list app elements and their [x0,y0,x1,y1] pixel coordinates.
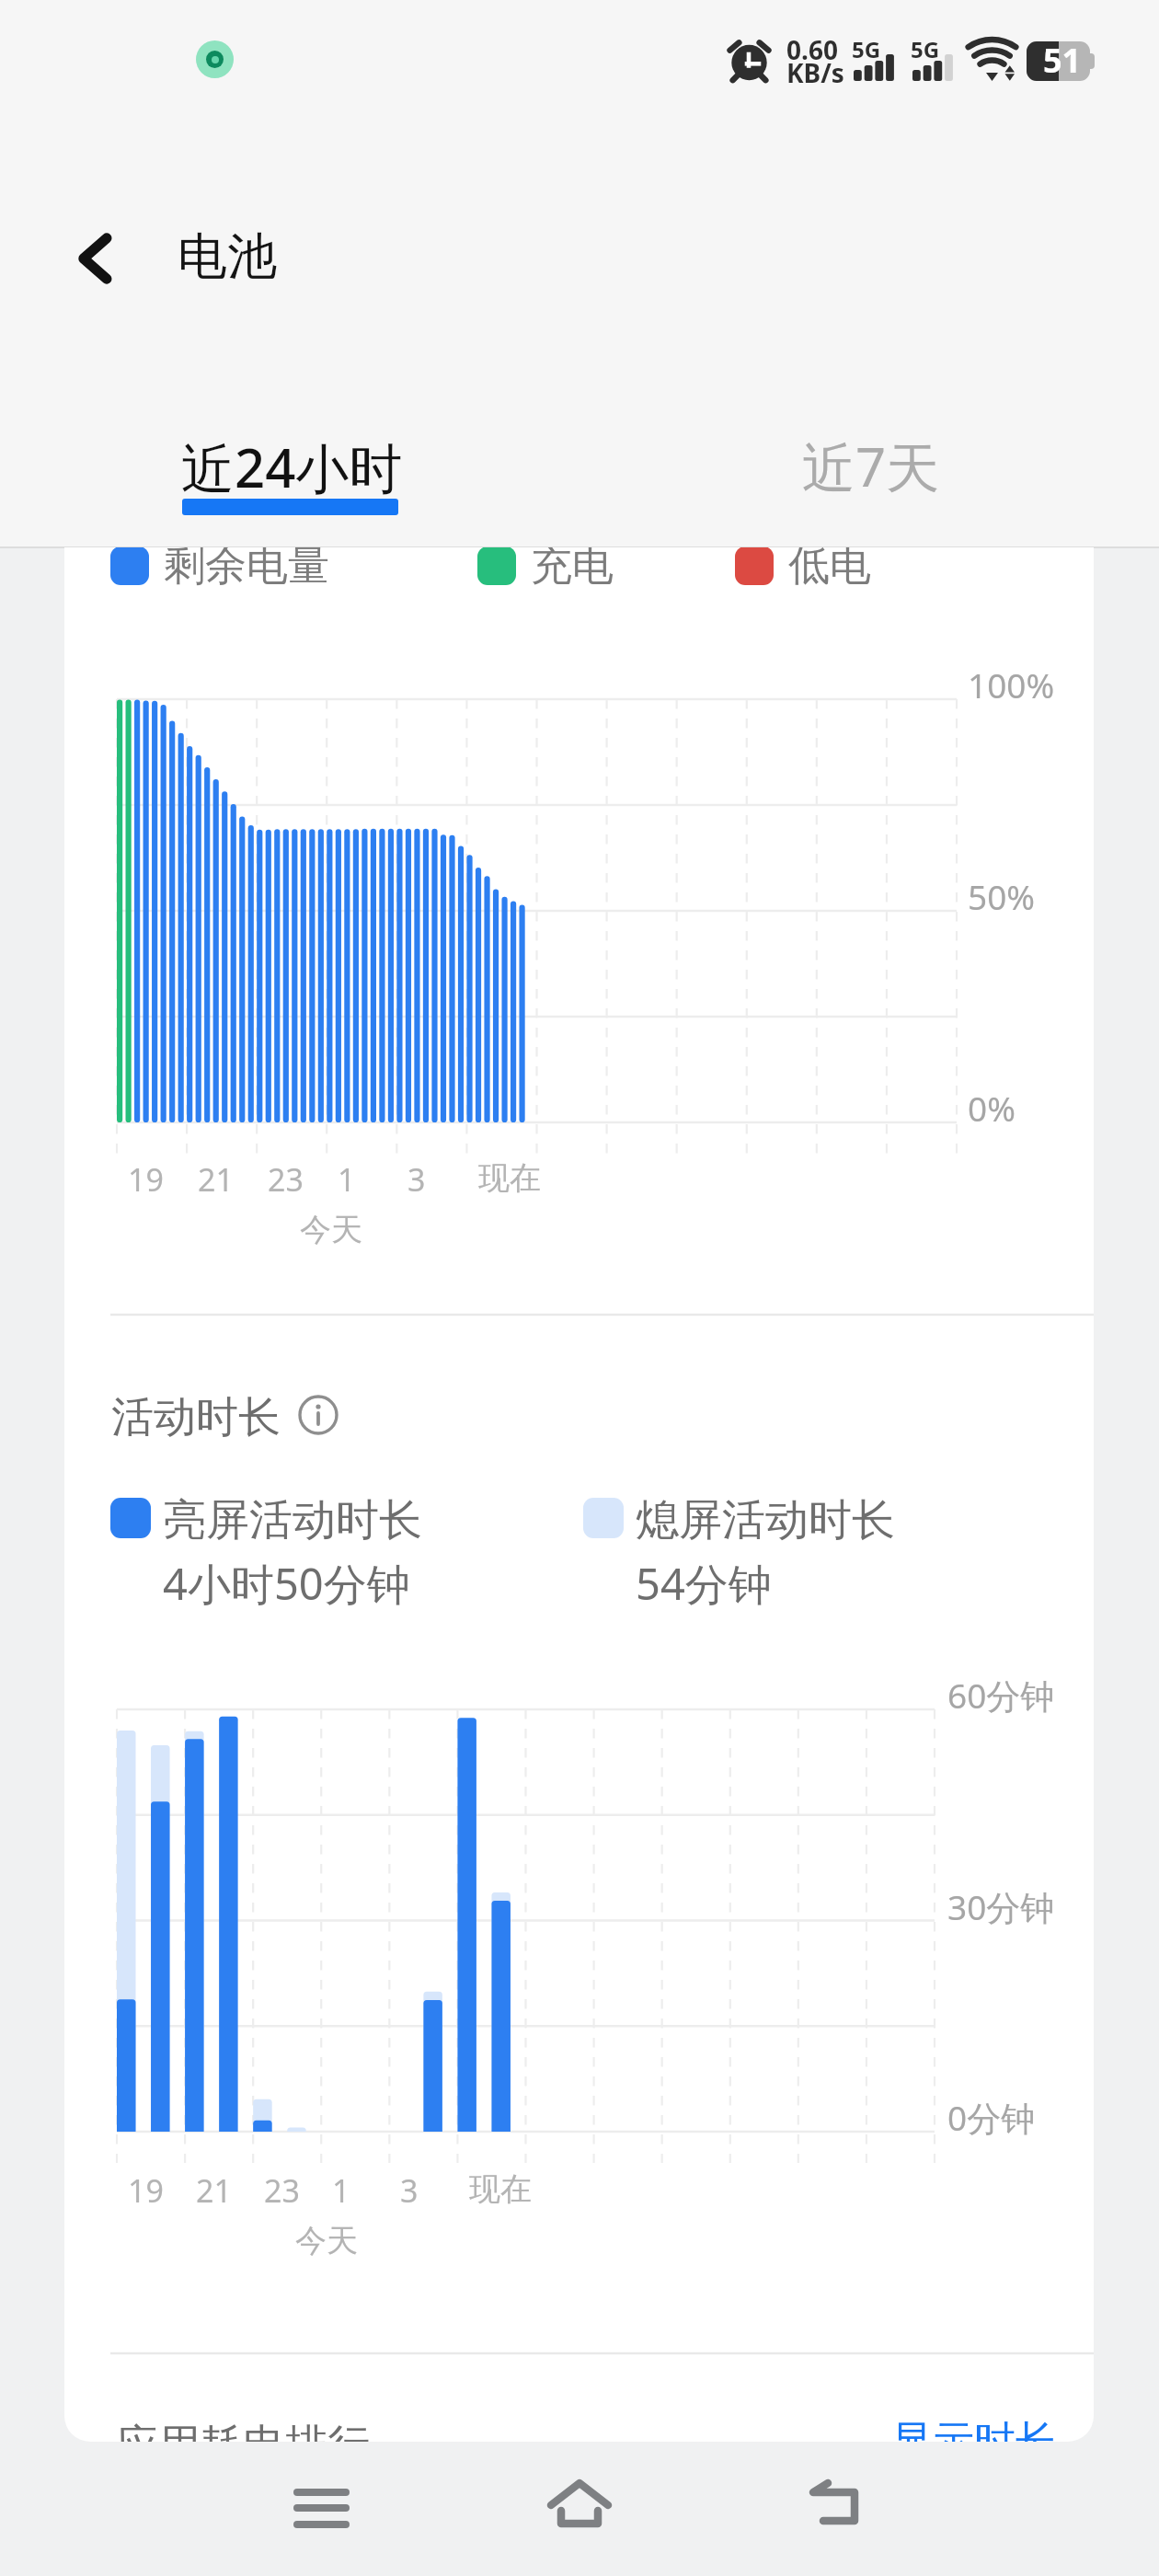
staticText: 23 [268,1158,304,1201]
button[interactable]: Home [515,2442,644,2576]
staticText: 今天 [295,2221,358,2260]
staticText: 显示时长 [891,2416,1057,2442]
staticText: 0.60 [786,32,838,67]
button[interactable]: 近24小时 [0,386,579,546]
staticText: 活动时长 [111,1391,281,1444]
button[interactable]: Info [298,1395,339,1435]
staticText: 21 [198,1158,234,1201]
staticText: 现在 [469,2169,532,2209]
staticText: 30分钟 [947,1883,1055,1930]
staticText: 50% [968,873,1036,919]
staticText: 充电 [531,547,614,592]
staticText: 今天 [300,1210,362,1249]
staticText: 54分钟 [636,1554,772,1613]
button[interactable]: Recent apps [258,2442,386,2576]
button[interactable]: Back [773,2442,901,2576]
staticText: 1 [338,1158,356,1201]
staticText: 0分钟 [947,2094,1036,2141]
staticText: 亮屏活动时长 [163,1493,422,1547]
staticText: 3 [407,1158,426,1201]
staticText: 熄屏活动时长 [636,1493,895,1547]
staticText: 19 [128,2169,164,2212]
staticText: 19 [128,1158,164,1201]
staticText: 剩余电量 [164,547,329,592]
staticText: 5G [911,34,940,64]
staticText: 1 [332,2169,350,2212]
staticText: 3 [400,2169,419,2212]
staticText: 60分钟 [947,1672,1055,1719]
staticText: 5G [852,34,881,64]
button[interactable]: 应用耗电排行 [64,2374,1094,2442]
staticText: 近24小时 [181,431,403,503]
staticText: KB/s [786,55,844,90]
staticText: 0% [968,1085,1016,1131]
button[interactable]: 近7天 [579,386,1159,546]
staticText: 21 [196,2169,232,2212]
staticText: 应用耗电排行 [116,2419,370,2442]
button[interactable]: Back [53,216,138,301]
staticText: 低电 [788,547,871,592]
staticText: 近7天 [802,430,940,502]
staticText: 现在 [478,1158,541,1198]
staticText: 51 [1043,38,1082,78]
staticText: 电池 [178,225,277,288]
staticText: 23 [264,2169,300,2212]
staticText: 100% [968,661,1055,707]
staticText: 4小时50分钟 [163,1554,410,1613]
